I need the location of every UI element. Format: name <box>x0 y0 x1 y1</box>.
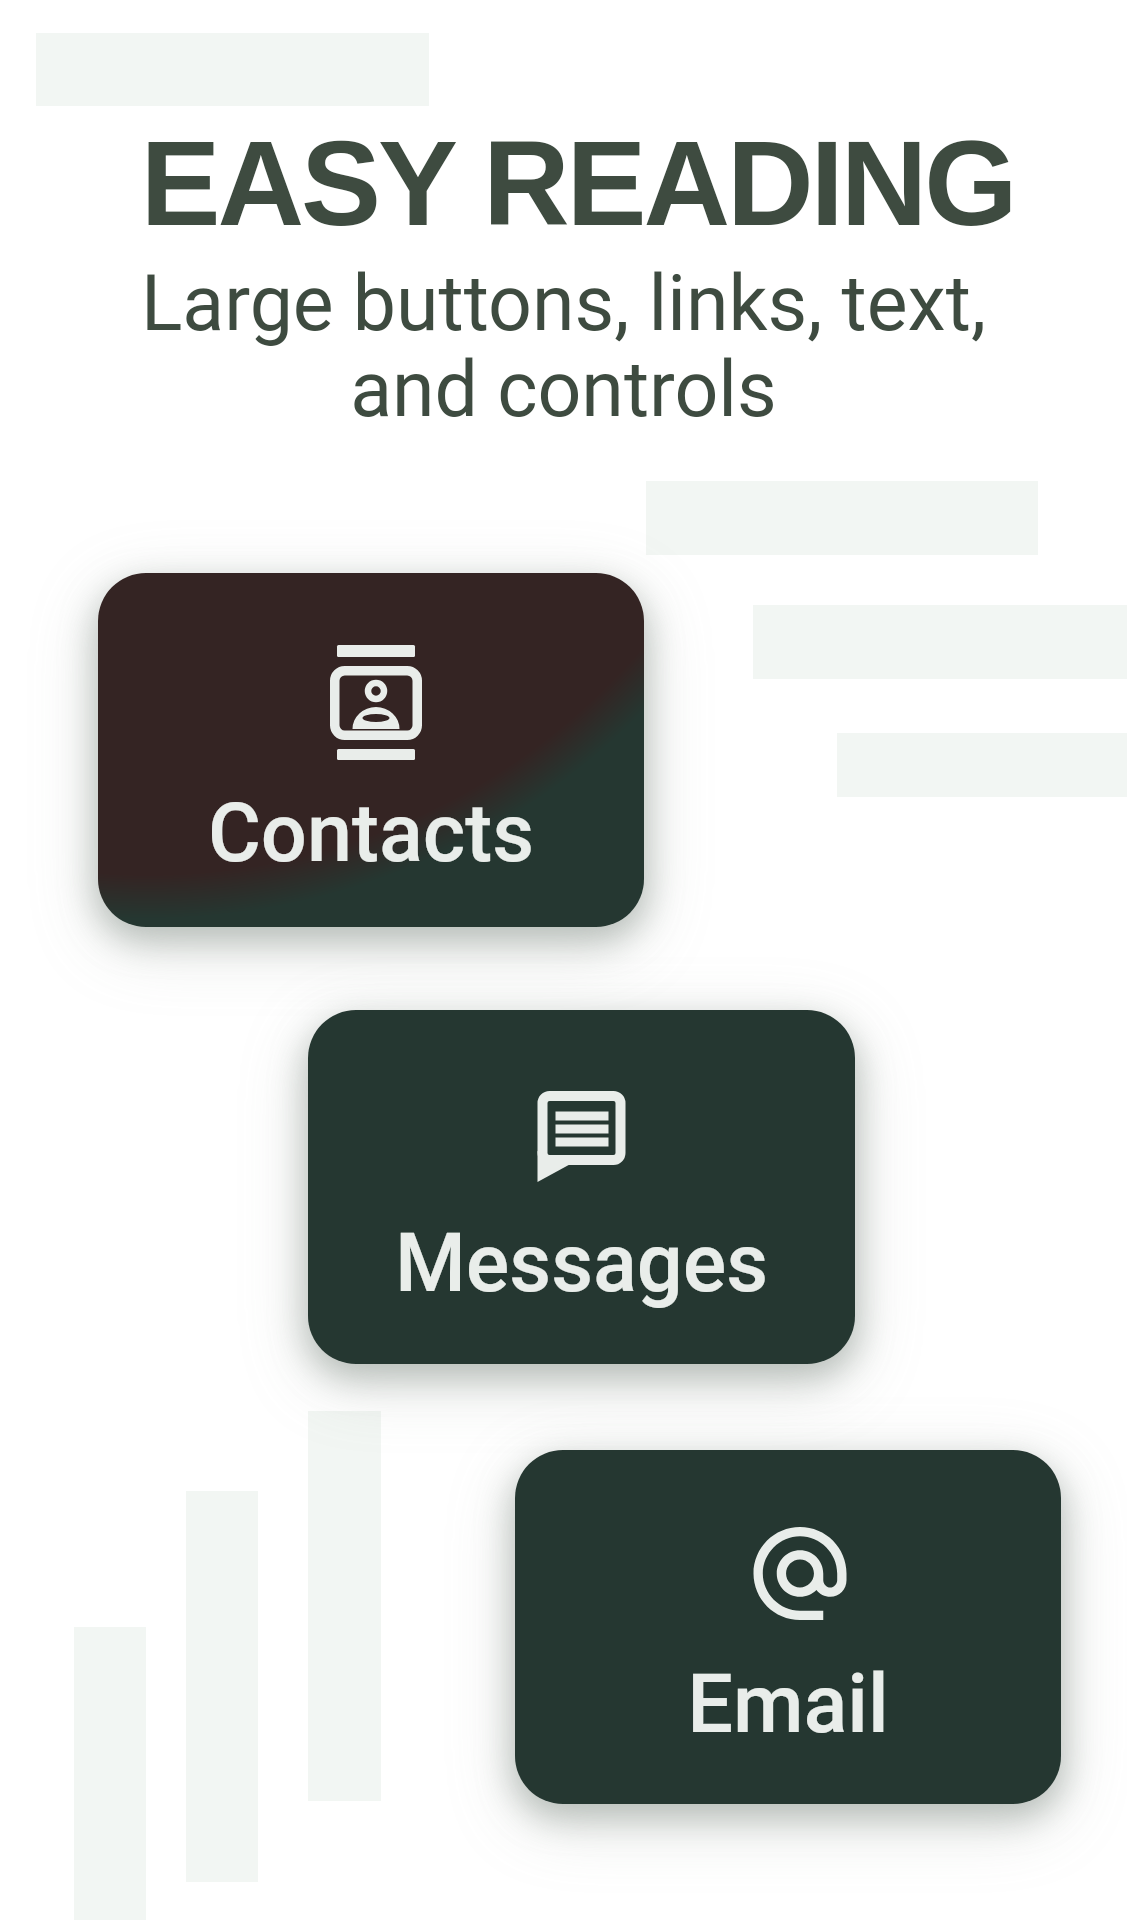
staticText: Messages <box>308 1216 855 1364</box>
button[interactable]: Contacts <box>98 573 644 927</box>
button[interactable]: Messages <box>308 1010 855 1364</box>
staticText: EASY READING <box>14 116 1127 261</box>
staticText: Contacts <box>98 786 644 927</box>
staticText: Large buttons, links, text, and controls <box>0 259 1127 469</box>
staticText: Email <box>515 1657 1061 1804</box>
button[interactable]: Email <box>515 1450 1061 1804</box>
